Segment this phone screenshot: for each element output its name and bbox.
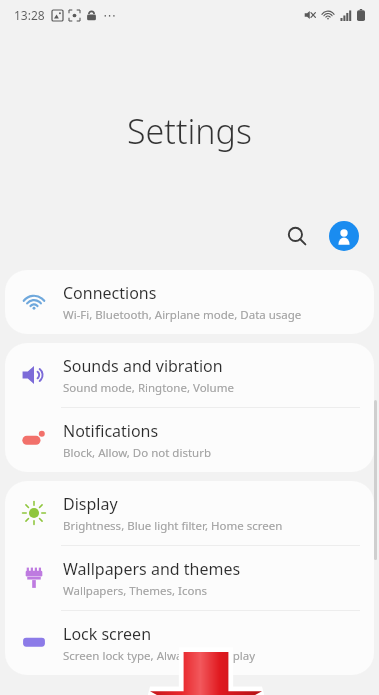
button[interactable]: Connections [5, 270, 374, 334]
staticText: 13:28 [14, 7, 45, 23]
staticText: Sounds and vibration [63, 355, 223, 377]
button[interactable]: Wallpapers and themes [5, 546, 374, 610]
staticText: Brightness, Blue light filter, Home scre… [63, 518, 283, 534]
button[interactable]: Sounds and vibration [5, 343, 374, 407]
staticText: Screen lock type, Always On Display [63, 648, 256, 664]
button[interactable]: Display [5, 481, 374, 545]
staticText: Wi-Fi, Bluetooth, Airplane mode, Data us… [63, 307, 302, 323]
staticText: Settings [127, 108, 252, 154]
button[interactable]: Lock screen [5, 611, 374, 675]
staticText: Notifications [63, 420, 159, 442]
button[interactable]: Account [329, 221, 359, 251]
staticText: Lock screen [63, 623, 152, 645]
staticText: ⋯ [103, 8, 116, 23]
staticText: Block, Allow, Do not disturb [63, 445, 211, 461]
staticText: Wallpapers, Themes, Icons [63, 583, 208, 599]
button[interactable]: Notifications [5, 408, 374, 472]
staticText: Sound mode, Ringtone, Volume [63, 380, 234, 396]
staticText: Wallpapers and themes [63, 558, 241, 580]
staticText: Connections [63, 282, 157, 304]
button[interactable]: Search [277, 216, 317, 256]
staticText: Display [63, 493, 118, 515]
